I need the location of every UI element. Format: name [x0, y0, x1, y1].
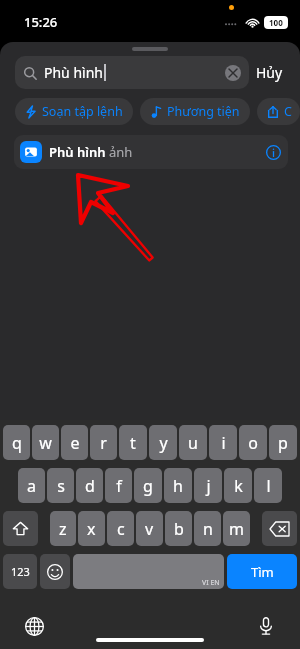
staticText: 123 — [11, 564, 30, 579]
button[interactable]: e — [61, 425, 88, 460]
button[interactable]: k — [224, 468, 252, 503]
staticText: Tìm — [251, 563, 274, 581]
button[interactable]: n — [194, 511, 221, 546]
button[interactable]: Phù hình — [15, 56, 249, 89]
button[interactable]: More info — [264, 143, 282, 161]
staticText: n — [203, 518, 213, 540]
button[interactable]: Chia — [257, 98, 300, 125]
button[interactable]: g — [134, 468, 162, 503]
staticText: q — [12, 432, 22, 454]
button[interactable]: Clear text — [225, 65, 241, 81]
button[interactable]: q — [3, 425, 30, 460]
button[interactable]: b — [165, 511, 192, 546]
button[interactable]: Hủy — [249, 57, 290, 88]
staticText: k — [234, 475, 243, 497]
button[interactable]: Soạn tập lệnh — [15, 98, 133, 125]
staticText: 100 — [269, 17, 283, 28]
staticText: 15:26 — [24, 13, 58, 31]
button[interactable]: a — [18, 468, 45, 503]
staticText: m — [229, 518, 244, 540]
staticText: Chia — [284, 103, 290, 120]
staticText: c — [117, 518, 125, 540]
staticText: Phù hình — [49, 143, 106, 161]
button[interactable]: Tìm — [227, 554, 297, 589]
button[interactable]: x — [78, 511, 105, 546]
button[interactable]: Shift — [3, 511, 38, 546]
staticText: VI EN — [202, 578, 220, 588]
staticText: b — [174, 518, 184, 540]
button[interactable]: r — [90, 425, 117, 460]
button[interactable]: h — [164, 468, 192, 503]
staticText: Phù hình — [44, 63, 103, 82]
staticText: a — [27, 475, 36, 497]
button[interactable]: d — [76, 468, 103, 503]
button[interactable]: Space — [73, 554, 224, 589]
staticText: j — [206, 475, 211, 497]
staticText: g — [143, 475, 153, 497]
button[interactable]: t — [119, 425, 147, 460]
staticText: Hủy — [256, 63, 283, 82]
staticText: ảnh — [109, 143, 133, 161]
staticText: l — [266, 475, 271, 497]
staticText: o — [248, 432, 258, 454]
button[interactable]: Dictate — [254, 614, 278, 638]
button[interactable]: Change keyboard language — [22, 614, 46, 638]
staticText: h — [173, 475, 183, 497]
staticText: f — [116, 475, 122, 497]
staticText: v — [145, 518, 154, 540]
button[interactable]: c — [107, 511, 134, 546]
button[interactable]: l — [254, 468, 282, 503]
button[interactable]: m — [223, 511, 250, 546]
staticText: Soạn tập lệnh — [42, 103, 123, 120]
staticText: z — [59, 518, 67, 540]
button[interactable]: v — [136, 511, 163, 546]
staticText: w — [39, 432, 52, 454]
staticText: r — [100, 432, 107, 454]
button[interactable]: Phương tiện — [140, 98, 250, 125]
staticText: e — [70, 432, 80, 454]
button[interactable]: z — [50, 511, 76, 546]
staticText: i — [221, 432, 226, 454]
button[interactable]: f — [105, 468, 132, 503]
staticText: d — [85, 475, 95, 497]
button[interactable]: y — [149, 425, 177, 460]
button[interactable]: Phù hình — [14, 135, 288, 169]
staticText: t — [130, 432, 136, 454]
button[interactable]: w — [32, 425, 59, 460]
button[interactable]: 123 — [3, 554, 37, 589]
button[interactable]: i — [209, 425, 237, 460]
button[interactable]: s — [47, 468, 74, 503]
staticText: s — [57, 475, 65, 497]
staticText: Phương tiện — [167, 103, 240, 120]
staticText: u — [188, 432, 198, 454]
button[interactable]: p — [269, 425, 297, 460]
staticText: p — [278, 432, 288, 454]
button[interactable]: u — [179, 425, 207, 460]
staticText: x — [87, 518, 96, 540]
button[interactable]: o — [239, 425, 267, 460]
button[interactable]: Emoji — [40, 554, 70, 589]
staticText: y — [159, 432, 168, 454]
button[interactable]: j — [194, 468, 222, 503]
button[interactable]: Backspace — [262, 511, 297, 546]
